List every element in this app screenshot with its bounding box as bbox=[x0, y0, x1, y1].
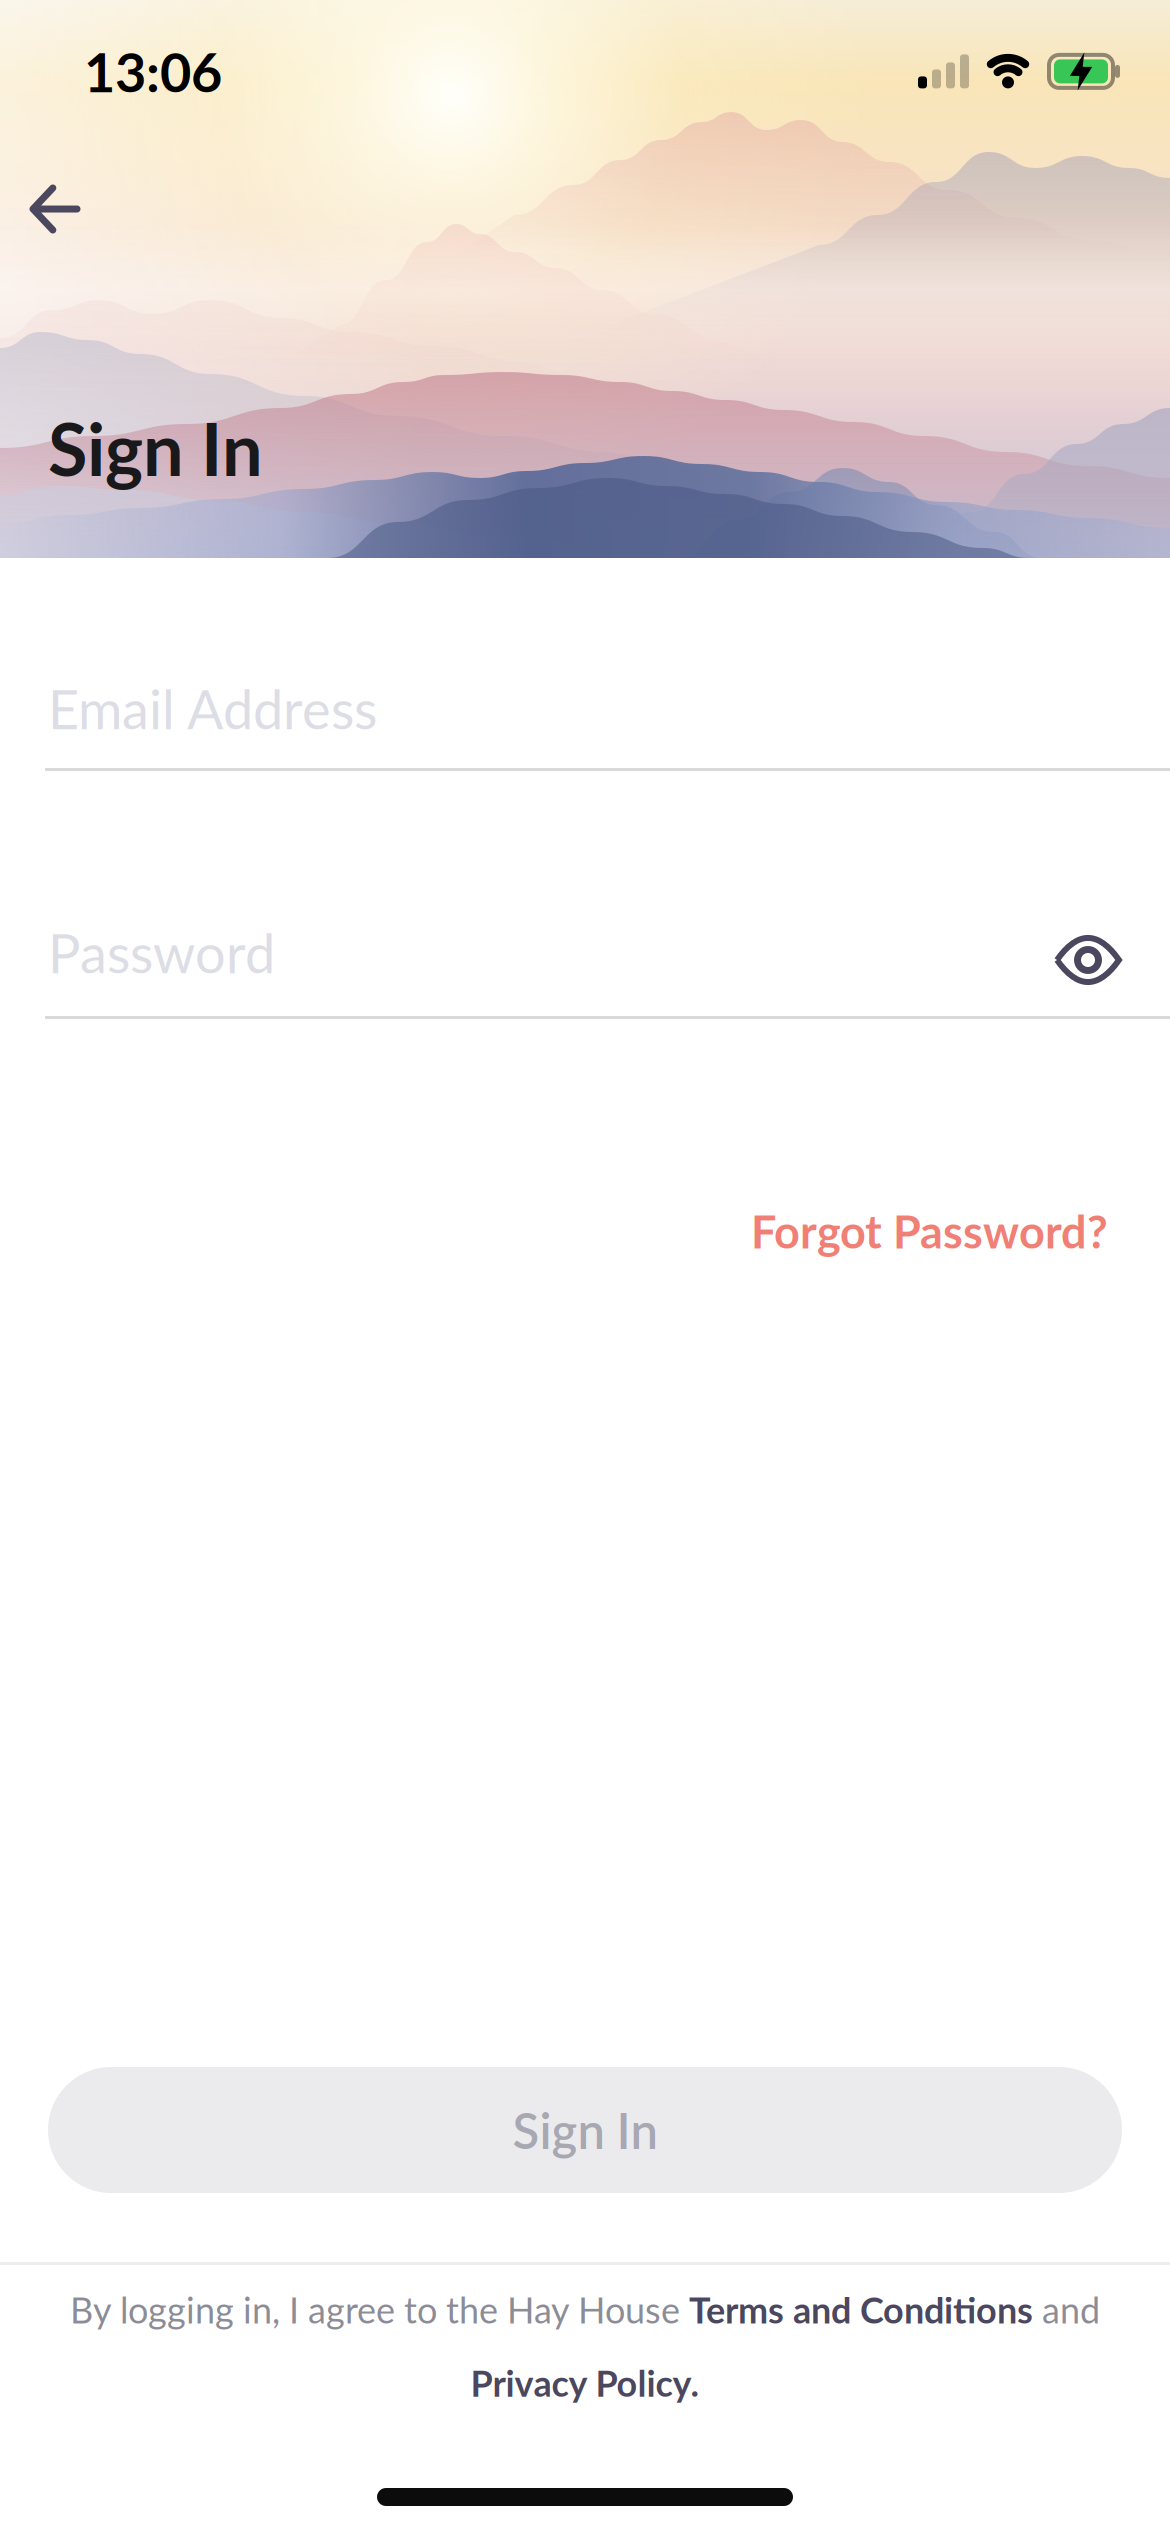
staticText: Terms and Conditions bbox=[689, 2288, 1033, 2331]
button[interactable]: Privacy Policy. bbox=[470, 2361, 699, 2404]
staticText: Privacy Policy. bbox=[470, 2361, 699, 2404]
staticText: Forgot Password? bbox=[751, 1204, 1108, 1258]
staticText: By logging in, I agree to the Hay House bbox=[70, 2288, 689, 2331]
button[interactable]: Email Address bbox=[0, 558, 1170, 771]
staticText: Sign In bbox=[512, 2101, 657, 2159]
staticText: Email Address bbox=[48, 676, 377, 741]
staticText: Sign In bbox=[48, 405, 263, 491]
button[interactable]: Terms and Conditions bbox=[689, 2288, 1033, 2331]
button[interactable]: Password bbox=[0, 558, 1170, 1019]
button[interactable]: Forgot Password? bbox=[751, 1204, 1108, 1258]
staticText: and bbox=[1033, 2288, 1100, 2331]
button[interactable]: Back bbox=[0, 0, 77, 230]
staticText: 13:06 bbox=[84, 39, 222, 104]
staticText: Password bbox=[48, 920, 275, 985]
button[interactable]: Sign In bbox=[48, 2067, 1122, 2193]
